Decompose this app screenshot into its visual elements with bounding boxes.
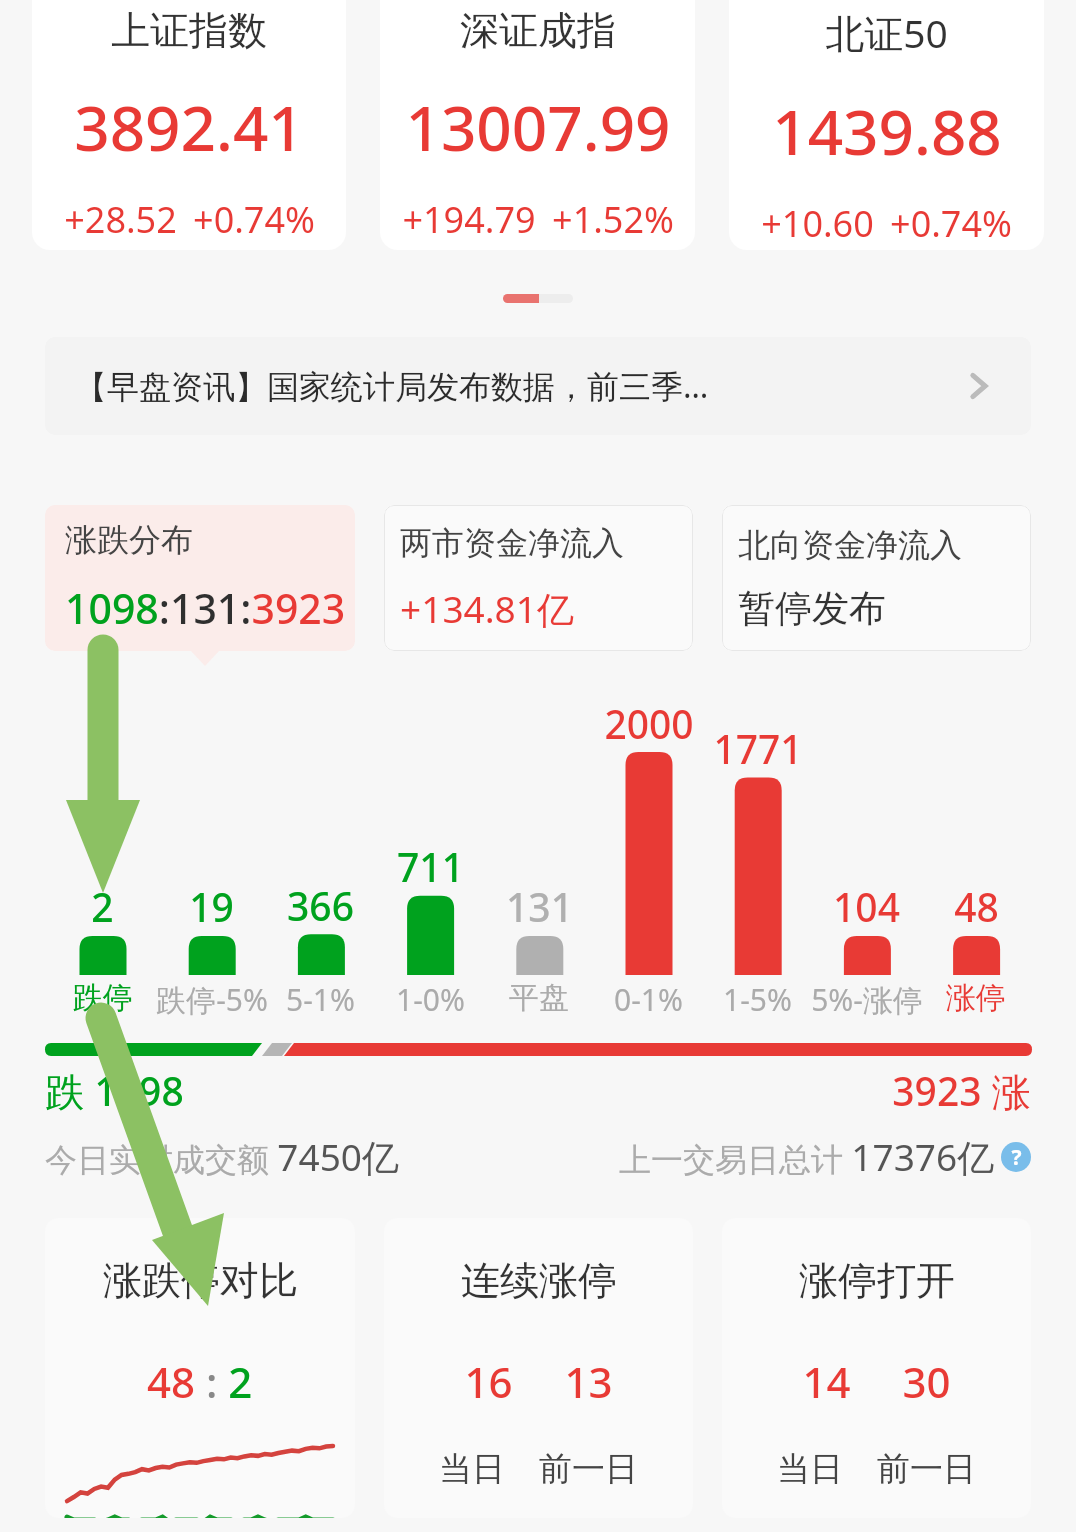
staticText: +0.74% <box>193 195 315 244</box>
staticText: 5%-涨停 <box>811 979 923 1020</box>
staticText: 涨跌分布 <box>65 520 193 560</box>
button[interactable]: 涨停打开 <box>722 1218 1031 1518</box>
button[interactable]: 连续涨停 <box>384 1218 693 1518</box>
staticText: 30 <box>902 1353 951 1410</box>
staticText: 1439.88 <box>772 89 1002 173</box>
staticText: 跌 1098 <box>45 1064 184 1117</box>
staticText: 16 <box>464 1353 513 1410</box>
staticText: 北向资金净流入 <box>738 525 962 565</box>
staticText: 3923 涨 <box>892 1064 1031 1117</box>
staticText: +1.52% <box>552 195 674 244</box>
staticText: 104 <box>833 880 900 933</box>
staticText: 北证50 <box>825 6 948 59</box>
staticText: 当日 <box>439 1448 505 1490</box>
staticText: 5-1% <box>286 979 355 1020</box>
staticText: +194.79 <box>402 195 536 244</box>
staticText: 131 <box>506 880 573 933</box>
staticText: 深证成指 <box>460 6 616 55</box>
staticText: 连续涨停 <box>461 1256 617 1305</box>
button[interactable]: 涨跌分布 <box>45 505 355 651</box>
button[interactable]: 涨跌停对比 <box>45 1218 355 1518</box>
button[interactable]: 上证指数 <box>32 0 346 250</box>
staticText: 1-5% <box>723 979 792 1020</box>
staticText: 3892.41 <box>74 85 304 169</box>
staticText: 1771 <box>713 722 803 775</box>
button[interactable]: 两市资金净流入 <box>384 505 693 651</box>
staticText: 上一交易日总计 17376亿 <box>619 1131 995 1182</box>
staticText: 2000 <box>604 697 694 750</box>
button[interactable]: 北证50 <box>729 0 1044 250</box>
staticText: +0.74% <box>890 199 1012 248</box>
staticText: 0-1% <box>614 979 683 1020</box>
staticText: 711 <box>397 840 464 893</box>
staticText: 上证指数 <box>111 6 267 55</box>
staticText: 今日实时成交额 7450亿 <box>45 1131 399 1182</box>
staticText: 1-0% <box>396 979 465 1020</box>
button[interactable]: 【早盘资讯】国家统计局发布数据，前三季… <box>45 337 1031 435</box>
staticText: ? <box>1011 1143 1022 1172</box>
button[interactable]: 北向资金净流入 <box>722 505 1031 651</box>
staticText: 48 : 2 <box>147 1353 253 1410</box>
button[interactable]: Open news <box>957 364 1001 408</box>
staticText: 跌停-5% <box>156 979 268 1020</box>
staticText: 366 <box>287 879 354 932</box>
staticText: 14 <box>802 1353 851 1410</box>
staticText: 涨停 <box>946 979 1006 1017</box>
staticText: +10.60 <box>761 199 874 248</box>
staticText: 前一日 <box>539 1448 638 1490</box>
staticText: 跌停 <box>73 979 133 1017</box>
staticText: 13 <box>564 1353 613 1410</box>
staticText: +134.81亿 <box>400 583 574 634</box>
staticText: 2 <box>91 880 114 933</box>
staticText: +28.52 <box>64 195 177 244</box>
staticText: 涨跌停对比 <box>103 1256 298 1305</box>
staticText: 48 <box>954 880 999 933</box>
staticText: 当日 <box>777 1448 843 1490</box>
staticText: 13007.99 <box>405 85 671 169</box>
staticText: 平盘 <box>509 979 569 1017</box>
button[interactable]: Help <box>1001 1142 1031 1172</box>
staticText: 1098:131:3923 <box>65 580 346 636</box>
staticText: 暂停发布 <box>738 585 886 632</box>
staticText: 前一日 <box>877 1448 976 1490</box>
staticText: 19 <box>189 880 234 933</box>
staticText: 【早盘资讯】国家统计局发布数据，前三季… <box>75 364 957 408</box>
button[interactable]: 深证成指 <box>380 0 695 250</box>
staticText: 两市资金净流入 <box>400 523 624 563</box>
staticText: 涨停打开 <box>799 1256 955 1305</box>
